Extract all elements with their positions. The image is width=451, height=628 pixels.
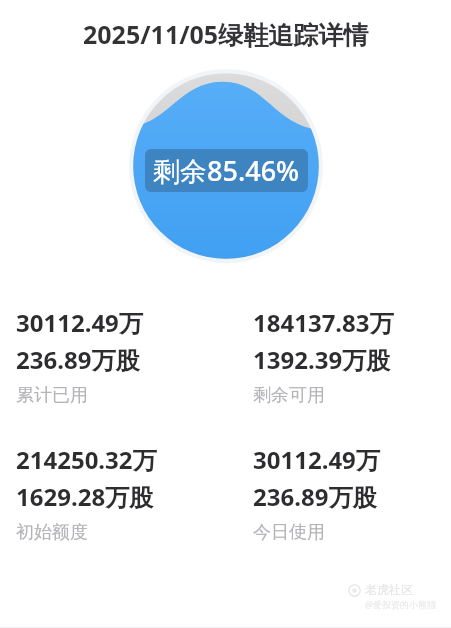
staticText: 今日使用 — [253, 521, 325, 544]
staticText: 30112.49万 — [16, 306, 143, 339]
staticText: 剩余可用 — [253, 384, 325, 407]
staticText: 1392.39万股 — [253, 343, 391, 376]
staticText: 初始额度 — [16, 521, 88, 544]
button[interactable]: 30112.49万 — [0, 306, 237, 407]
staticText: 30112.49万 — [253, 443, 380, 476]
staticText: 剩余85.46% — [153, 152, 300, 189]
staticText: 184137.83万 — [253, 306, 394, 339]
staticText: 老虎社区 — [365, 582, 413, 597]
staticText: 236.89万股 — [16, 343, 140, 376]
button[interactable]: 184137.83万 — [237, 306, 451, 407]
button[interactable]: 214250.32万 — [0, 443, 237, 544]
button[interactable]: 剩余额度 85.46% — [129, 69, 323, 263]
staticText: 214250.32万 — [16, 443, 157, 476]
staticText: 2025/11/05绿鞋追踪详情 — [83, 17, 369, 51]
staticText: 1629.28万股 — [16, 480, 154, 513]
staticText: 236.89万股 — [253, 480, 377, 513]
staticText: @爱投资的小熊猫 — [365, 598, 437, 610]
staticText: 累计已用 — [16, 384, 88, 407]
button[interactable]: 30112.49万 — [237, 443, 451, 544]
